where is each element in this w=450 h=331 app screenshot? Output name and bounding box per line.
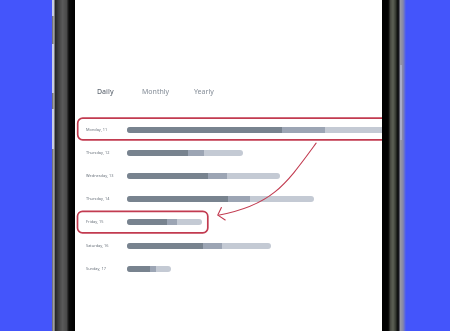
button[interactable]: Thursday, 12: [86, 146, 382, 159]
staticText: Monthly: [142, 87, 170, 97]
button[interactable]: Daily: [95, 85, 116, 99]
button[interactable]: Monthly: [140, 85, 172, 99]
staticText: Thursday, 12: [86, 150, 127, 155]
button[interactable]: Saturday, 16: [86, 239, 382, 252]
button[interactable]: Thursday, 14: [86, 192, 382, 205]
staticText: Sunday, 17: [86, 266, 127, 271]
button[interactable]: Friday, 15: [86, 215, 382, 228]
staticText: Yearly: [194, 87, 214, 97]
staticText: Daily: [97, 87, 114, 97]
button[interactable]: Sunday, 17: [86, 262, 382, 275]
button[interactable]: Monday, 11: [86, 123, 382, 136]
staticText: Friday, 15: [86, 219, 127, 224]
button[interactable]: Wednesday, 13: [86, 169, 382, 182]
staticText: Thursday, 14: [86, 196, 127, 201]
staticText: Wednesday, 13: [86, 173, 127, 178]
button[interactable]: Yearly: [192, 85, 216, 99]
staticText: Saturday, 16: [86, 243, 127, 248]
staticText: Monday, 11: [86, 127, 127, 132]
